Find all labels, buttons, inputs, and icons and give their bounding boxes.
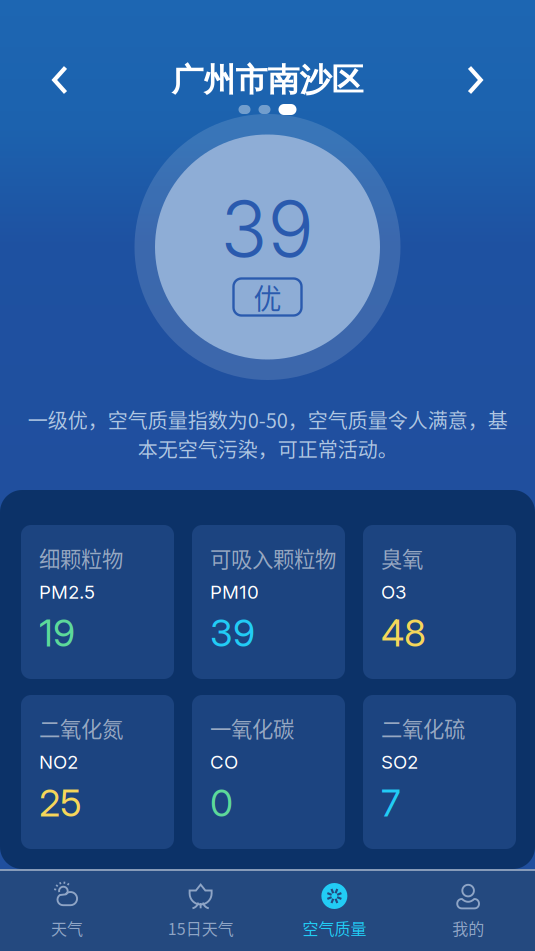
staticText: 天气 — [51, 916, 83, 940]
staticText: 臭氧 — [381, 543, 423, 573]
staticText: 39 — [220, 182, 314, 275]
staticText: 7 — [381, 780, 401, 826]
staticText: O3 — [381, 581, 407, 603]
staticText: NO2 — [39, 751, 78, 773]
staticText: 空气质量 — [302, 916, 366, 940]
staticText: 48 — [381, 610, 426, 656]
staticText: 19 — [39, 610, 75, 656]
staticText: 广州市南沙区 — [171, 60, 363, 100]
button[interactable]: 臭氧 — [363, 525, 516, 679]
staticText: 0 — [210, 780, 233, 826]
button[interactable]: Previous city — [35, 56, 83, 104]
button[interactable]: 一氧化碳 — [192, 695, 345, 849]
button[interactable]: Next city — [452, 56, 500, 104]
staticText: 可吸入颗粒物 — [210, 543, 336, 573]
staticText: 细颗粒物 — [39, 543, 123, 573]
staticText: 优 — [253, 277, 281, 317]
staticText: CO — [210, 751, 238, 773]
button[interactable]: 二氧化硫 — [363, 695, 516, 849]
button[interactable]: 15日天气 — [134, 871, 268, 949]
staticText: 二氧化氮 — [39, 713, 123, 743]
staticText: SO2 — [381, 751, 418, 773]
staticText: PM10 — [210, 581, 259, 603]
staticText: 二氧化硫 — [381, 713, 465, 743]
button[interactable]: 二氧化氮 — [21, 695, 174, 849]
button[interactable]: 天气 — [0, 871, 134, 949]
staticText: 25 — [39, 780, 82, 826]
staticText: 39 — [210, 610, 255, 656]
button[interactable]: 空气质量 — [267, 871, 401, 949]
staticText: 我的 — [452, 916, 484, 940]
staticText: PM2.5 — [39, 581, 95, 603]
staticText: 一级优，空气质量指数为0-50，空气质量令人满意，基 本无空气污染，可正常活动。 — [27, 405, 507, 463]
staticText: 一氧化碳 — [210, 713, 294, 743]
staticText: 15日天气 — [168, 916, 234, 940]
button[interactable]: 细颗粒物 — [21, 525, 174, 679]
button[interactable]: 我的 — [401, 871, 535, 949]
button[interactable]: 可吸入颗粒物 — [192, 525, 345, 679]
